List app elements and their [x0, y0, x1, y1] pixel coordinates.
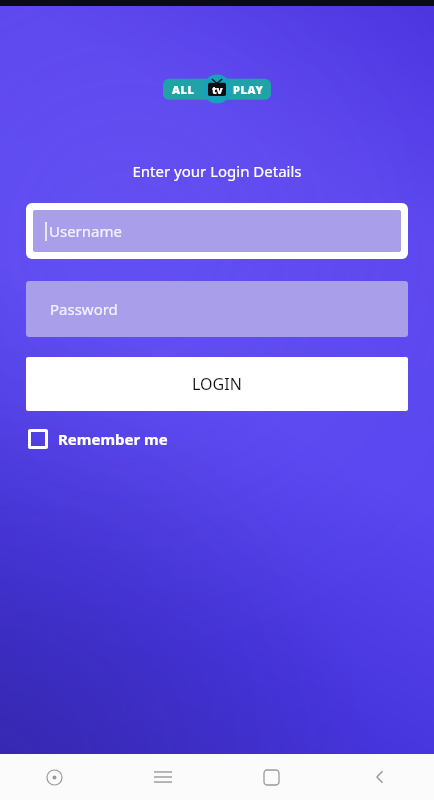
button[interactable]: Username — [33, 210, 401, 252]
staticText: Enter your Login Details — [132, 161, 302, 181]
staticText: Username — [49, 221, 122, 241]
button[interactable]: Home — [251, 757, 291, 797]
button[interactable]: Assistant — [34, 757, 74, 797]
staticText: Password — [50, 299, 118, 319]
staticText: Remember me — [58, 429, 168, 449]
button[interactable]: Recent apps — [143, 757, 183, 797]
button[interactable]: LOGIN — [26, 357, 408, 411]
button[interactable]: Back — [360, 757, 400, 797]
staticText: LOGIN — [192, 373, 242, 395]
staticText: ALL — [172, 82, 195, 97]
staticText: tv — [212, 83, 223, 97]
staticText: PLAY — [233, 82, 264, 97]
button[interactable]: Remember me — [26, 425, 170, 453]
button[interactable]: Password — [26, 281, 408, 337]
